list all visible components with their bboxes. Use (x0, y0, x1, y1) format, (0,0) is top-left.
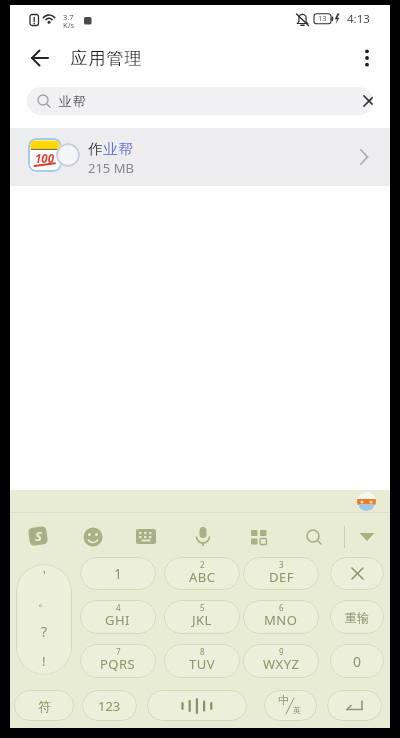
button[interactable] (357, 492, 376, 511)
staticText: TUV (189, 655, 216, 673)
button[interactable]: 123 (82, 690, 137, 721)
staticText: 13 (318, 13, 327, 23)
button[interactable]: S (27, 525, 49, 547)
staticText: ! (42, 652, 46, 670)
staticText: DEF (269, 568, 294, 586)
button[interactable] (305, 528, 323, 546)
staticText: 5 (200, 602, 205, 613)
staticText: 3.7 K/s (63, 12, 75, 28)
staticText: 3 (279, 559, 284, 570)
button[interactable]: 业帮 (27, 87, 373, 115)
staticText: 4 (116, 602, 121, 613)
button[interactable]: 中 (264, 690, 317, 721)
button[interactable]: 6 (243, 600, 319, 634)
button[interactable] (194, 526, 212, 548)
staticText: 9 (279, 646, 284, 657)
button[interactable] (136, 529, 156, 545)
staticText: 业帮 (58, 93, 86, 109)
staticText: 7 (116, 646, 121, 657)
staticText: 0 (353, 652, 362, 671)
staticText: 1 (114, 564, 123, 583)
staticText: 。 (38, 594, 50, 609)
staticText: ' (43, 567, 46, 583)
staticText: JKL (192, 611, 212, 629)
button[interactable]: 0 (330, 644, 384, 678)
button[interactable]: 100 (10, 128, 390, 186)
staticText: 符 (38, 698, 51, 714)
staticText: 4:13 (347, 11, 370, 27)
staticText: 215 MB (88, 159, 134, 177)
staticText: 6 (279, 602, 284, 613)
staticText: S (35, 527, 42, 545)
button[interactable] (327, 690, 382, 721)
button[interactable] (147, 690, 247, 721)
button[interactable] (330, 557, 384, 590)
button[interactable]: 符 (14, 690, 74, 721)
staticText: 中 (278, 693, 289, 707)
staticText: 123 (98, 697, 121, 715)
staticText: 8 (200, 646, 205, 657)
button[interactable]: 7 (80, 644, 156, 678)
button[interactable]: 4 (80, 600, 156, 634)
button[interactable]: ' (16, 564, 72, 675)
button[interactable]: 2 (164, 557, 240, 590)
staticText: WXYZ (263, 655, 300, 673)
button[interactable] (358, 531, 376, 543)
staticText: PQRS (100, 655, 136, 673)
staticText: GHI (105, 611, 131, 629)
staticText: MNO (264, 611, 298, 629)
staticText: ? (41, 622, 48, 641)
staticText: 2 (200, 559, 205, 570)
staticText: 英 (293, 705, 301, 715)
button[interactable] (360, 92, 373, 110)
button[interactable]: 5 (164, 600, 240, 634)
button[interactable]: 3 (243, 557, 319, 590)
button[interactable]: 8 (164, 644, 240, 678)
staticText: 重输 (345, 610, 369, 625)
button[interactable] (26, 44, 54, 72)
staticText: 100 (35, 151, 55, 167)
button[interactable] (83, 527, 103, 547)
button[interactable]: 9 (243, 644, 319, 678)
button[interactable]: 重输 (330, 600, 384, 634)
button[interactable] (250, 528, 268, 546)
button[interactable]: 1 (80, 557, 156, 590)
staticText: 应用管理 (70, 48, 142, 69)
button[interactable] (354, 44, 380, 72)
staticText: ABC (189, 568, 216, 586)
staticText: 作业帮 (88, 140, 134, 158)
